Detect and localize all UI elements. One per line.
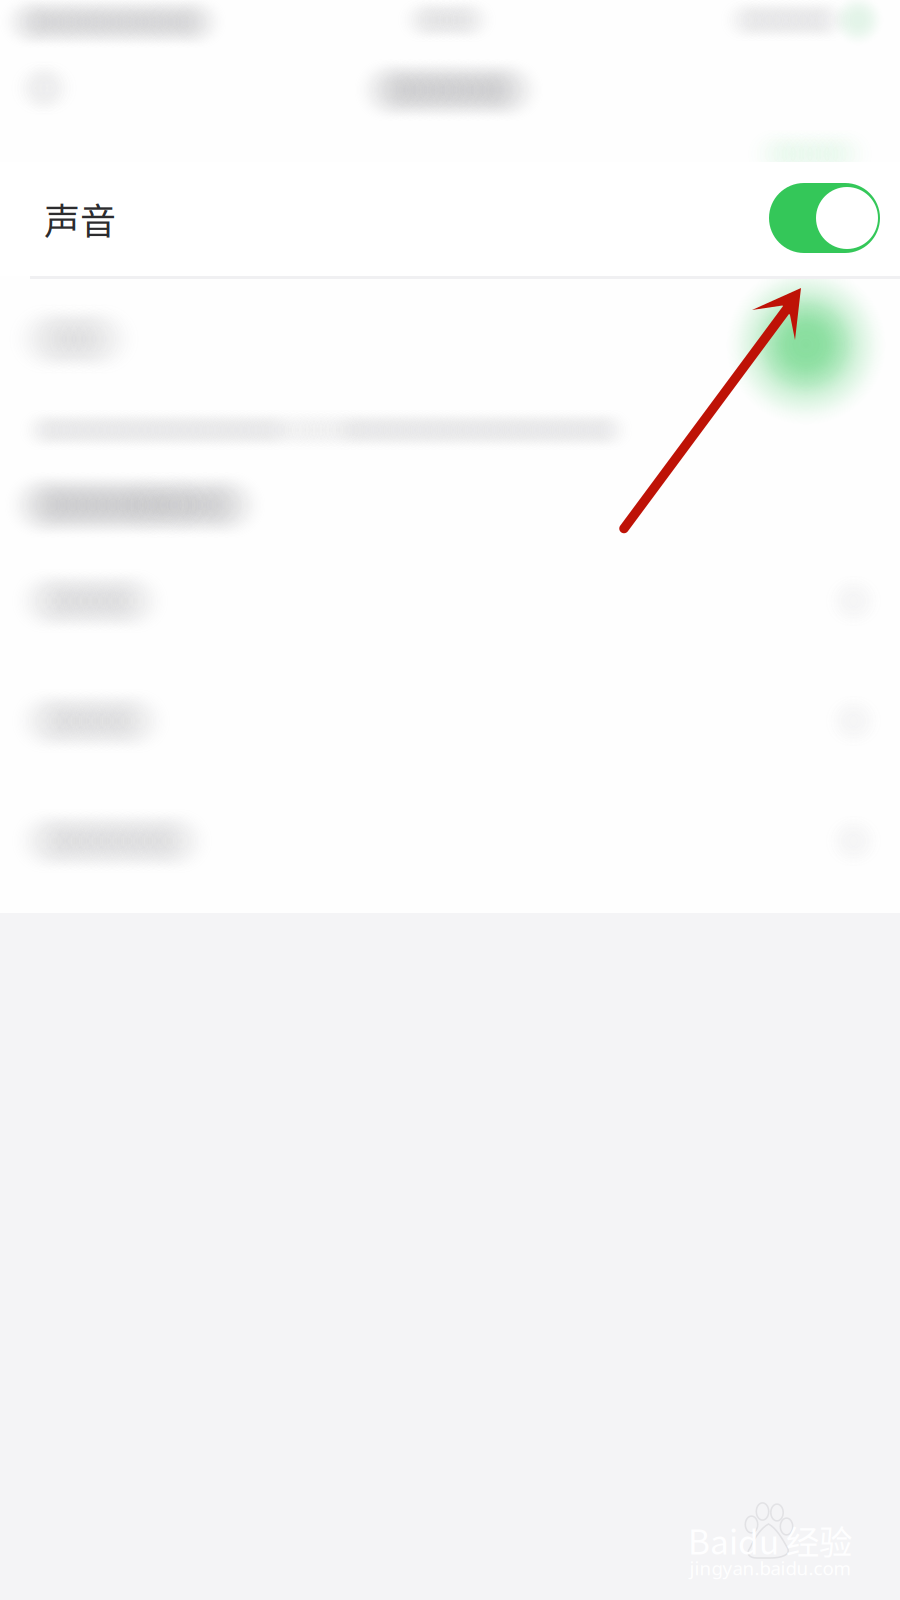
staticText: Baidu 经验 bbox=[688, 1516, 852, 1564]
button[interactable]: 声音 bbox=[0, 162, 900, 276]
staticText: 声音 bbox=[44, 193, 116, 245]
staticText: jingyan.baidu.com bbox=[689, 1556, 850, 1580]
